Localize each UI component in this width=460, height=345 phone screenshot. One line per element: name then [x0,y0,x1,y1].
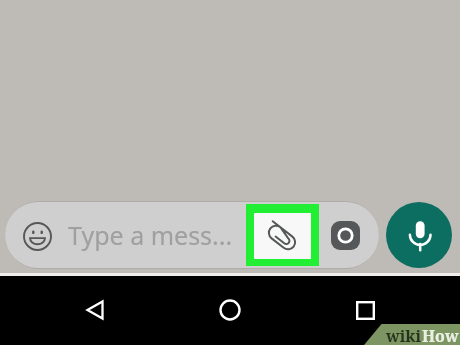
button[interactable]: Emoji [19,218,56,255]
button[interactable]: Back [78,293,112,327]
button[interactable]: Camera [327,217,364,254]
button[interactable]: Attach [254,213,311,259]
button[interactable]: Recent apps [348,293,382,327]
staticText: Type a mess... [68,218,233,252]
staticText: wiki [386,325,422,345]
button[interactable]: Type a mess... [68,202,240,268]
button[interactable]: Voice message [386,202,452,268]
staticText: How [422,325,459,345]
button[interactable]: Home [213,293,247,327]
